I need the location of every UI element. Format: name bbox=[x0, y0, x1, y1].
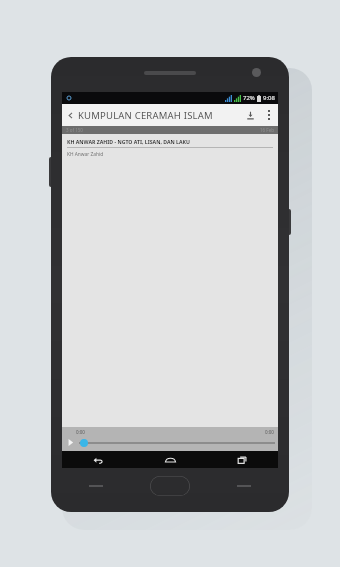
button[interactable]: KH ANWAR ZAHID - NGTO ATI, LISAN, DAN LA… bbox=[62, 134, 278, 161]
button[interactable]: Back bbox=[62, 104, 78, 126]
staticText: 9:08 bbox=[263, 94, 275, 102]
staticText: KUMPULAN CERAMAH ISLAM bbox=[78, 109, 240, 122]
staticText: 72% bbox=[243, 94, 255, 102]
staticText: KH Anwar Zahid bbox=[67, 151, 104, 158]
staticText: 0:00 bbox=[76, 429, 85, 435]
staticText: 16 Feb bbox=[260, 127, 274, 133]
button[interactable]: Seek bbox=[79, 438, 275, 448]
staticText: 0:00 bbox=[265, 429, 274, 435]
button[interactable]: Back bbox=[62, 451, 134, 468]
button[interactable]: Home bbox=[134, 451, 206, 468]
button[interactable]: Recents bbox=[206, 451, 278, 468]
button[interactable]: More options bbox=[260, 104, 278, 126]
staticText: 3 of 150 bbox=[66, 127, 83, 133]
button[interactable]: Download bbox=[240, 104, 260, 126]
staticText: KH ANWAR ZAHID - NGTO ATI, LISAN, DAN LA… bbox=[67, 138, 190, 145]
button[interactable]: Play bbox=[62, 434, 78, 450]
